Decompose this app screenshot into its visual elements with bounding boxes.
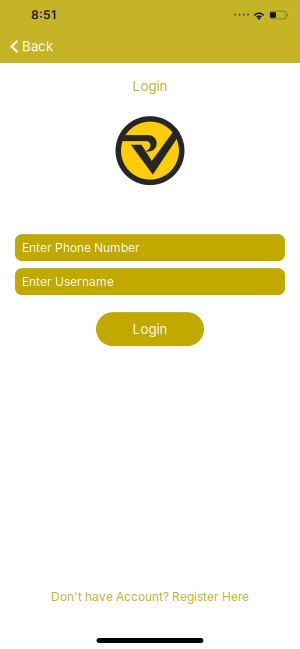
button[interactable]: Don't have Account? Register Here: [43, 584, 257, 609]
button[interactable]: Login: [96, 312, 204, 346]
staticText: Enter Username: [22, 274, 114, 289]
staticText: Login: [132, 78, 167, 94]
staticText: Enter Phone Number: [22, 240, 140, 255]
button[interactable]: Enter Phone Number: [15, 234, 285, 261]
button[interactable]: Enter Username: [15, 268, 285, 295]
button[interactable]: Back: [0, 30, 63, 63]
staticText: 8:51: [31, 8, 56, 22]
staticText: Login: [132, 321, 167, 337]
staticText: Back: [22, 38, 53, 54]
staticText: Don't have Account? Register Here: [51, 589, 249, 604]
